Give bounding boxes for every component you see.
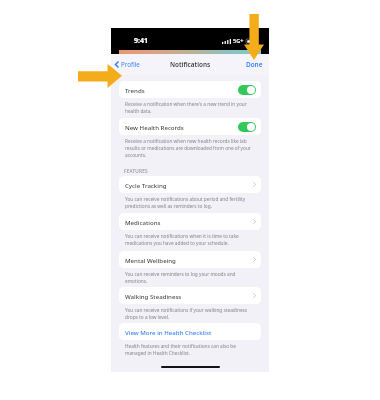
staticText: FEATURES (124, 168, 148, 174)
staticText: You can receive notifications when it is… (125, 233, 251, 247)
button[interactable]: Cycle Tracking (119, 176, 261, 193)
button[interactable]: Mental Wellbeing (119, 251, 261, 268)
staticText: 5G+ (233, 37, 244, 45)
staticText: You can receive reminders to log your mo… (125, 271, 251, 285)
button[interactable]: Profile (111, 57, 144, 71)
staticText: 9:41 (134, 36, 148, 46)
staticText: New Health Records (125, 123, 238, 131)
staticText: Profile (121, 60, 140, 68)
staticText: Done (246, 60, 263, 69)
staticText: Receive a notification when new health r… (125, 138, 251, 159)
button[interactable]: Trends (119, 81, 261, 98)
button[interactable]: Medications (119, 213, 261, 230)
button[interactable]: Done (240, 57, 269, 72)
staticText: Medications (125, 218, 253, 226)
button[interactable]: Toggle, on (238, 122, 256, 132)
staticText: Mental Wellbeing (125, 256, 253, 264)
staticText: Walking Steadiness (125, 292, 253, 300)
staticText: Receive a notification when there's a ne… (125, 101, 251, 115)
staticText: Notifications (170, 60, 211, 69)
button[interactable]: Toggle, on (238, 85, 256, 95)
staticText: You can receive notifications if your wa… (125, 307, 251, 321)
button[interactable]: Walking Steadiness (119, 287, 261, 304)
staticText: Health features and their notifications … (125, 343, 251, 357)
staticText: Trends (125, 86, 238, 94)
staticText: View More in Health Checklist (125, 328, 256, 336)
staticText: You can receive notifications about peri… (125, 196, 251, 210)
button[interactable]: View More in Health Checklist (119, 323, 261, 340)
staticText: Cycle Tracking (125, 181, 253, 189)
button[interactable]: New Health Records (119, 118, 261, 135)
